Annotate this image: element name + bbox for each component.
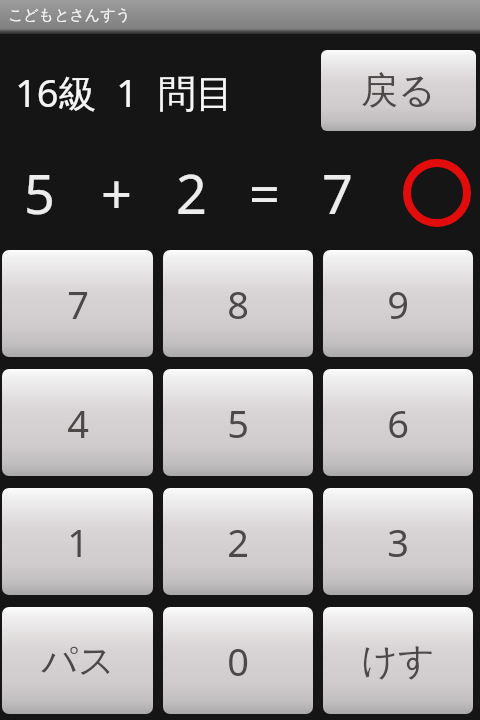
staticText: 6: [387, 397, 409, 449]
staticText: 16級 1 問目: [15, 66, 234, 118]
staticText: 2: [227, 516, 249, 568]
button[interactable]: 4: [2, 369, 153, 476]
button[interactable]: 1: [2, 488, 153, 595]
other: Correct: [402, 158, 472, 228]
staticText: 3: [387, 516, 409, 568]
staticText: こどもとさんすう: [8, 6, 131, 25]
staticText: 9: [387, 278, 409, 330]
staticText: 4: [67, 397, 89, 449]
staticText: 2: [176, 156, 207, 230]
staticText: =: [249, 156, 280, 230]
staticText: 戻る: [361, 67, 436, 114]
button[interactable]: 9: [323, 250, 473, 357]
button[interactable]: 3: [323, 488, 473, 595]
button[interactable]: けす: [323, 607, 473, 714]
button[interactable]: 5: [163, 369, 313, 476]
staticText: +: [101, 156, 132, 230]
staticText: 1: [67, 516, 89, 568]
staticText: 5: [24, 156, 55, 230]
staticText: けす: [361, 638, 435, 683]
button[interactable]: パス: [2, 607, 153, 714]
staticText: 5: [227, 397, 249, 449]
staticText: 7: [67, 278, 89, 330]
button[interactable]: 0: [163, 607, 313, 714]
button[interactable]: 8: [163, 250, 313, 357]
staticText: 8: [227, 278, 249, 330]
staticText: 0: [227, 635, 249, 687]
button[interactable]: 6: [323, 369, 473, 476]
button[interactable]: 7: [2, 250, 153, 357]
staticText: パス: [41, 638, 115, 683]
button[interactable]: 2: [163, 488, 313, 595]
staticText: 7: [322, 156, 353, 230]
button[interactable]: 戻る: [321, 50, 476, 131]
